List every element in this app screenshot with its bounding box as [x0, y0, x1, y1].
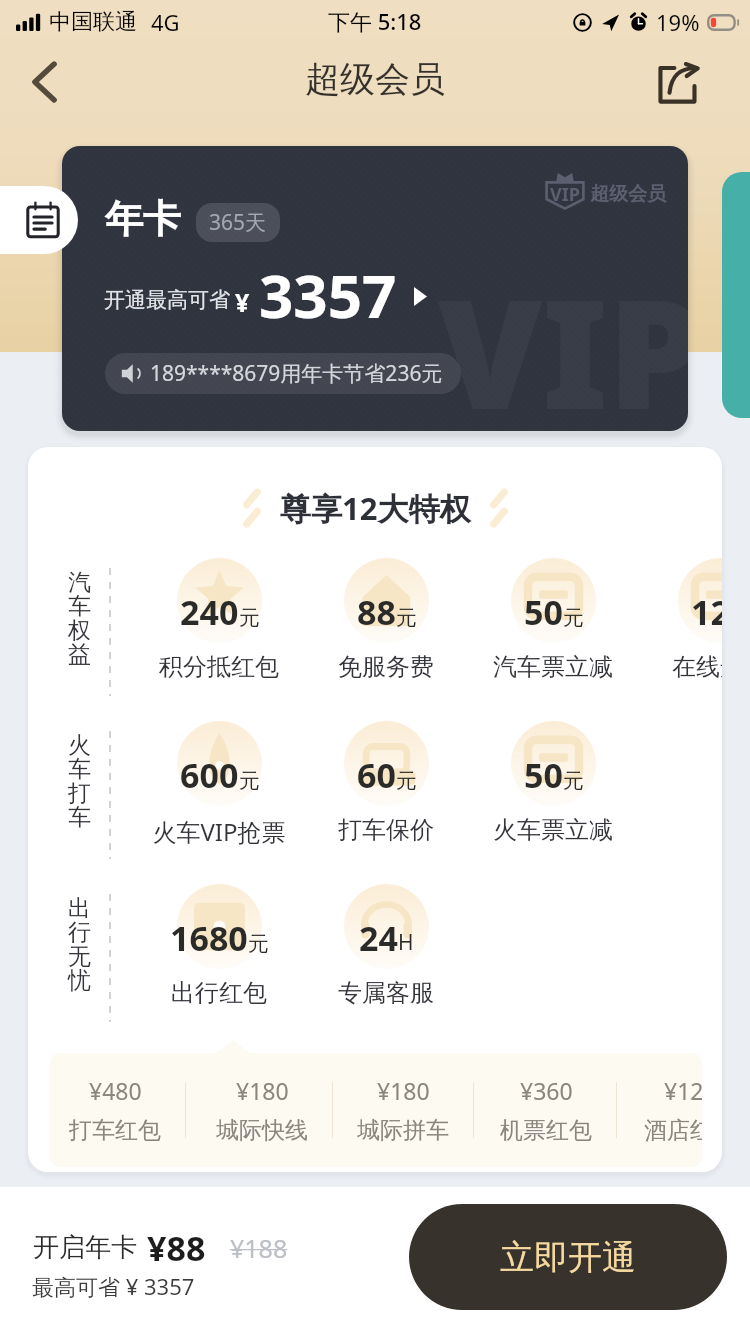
staticText: 50 — [524, 589, 563, 635]
button[interactable]: Next plan — [722, 172, 750, 418]
staticText: 打车红包 — [69, 1116, 161, 1145]
staticText: 城际拼车 — [357, 1116, 449, 1145]
staticText: H — [398, 928, 414, 957]
staticText: 19% — [656, 7, 700, 37]
staticText: ¥180 — [236, 1075, 289, 1106]
staticText: 元 — [563, 605, 584, 631]
staticText: 元 — [563, 768, 584, 794]
staticText: 元 — [239, 768, 260, 794]
staticText: 1680 — [170, 915, 248, 961]
button[interactable]: 88 — [302, 556, 470, 682]
button[interactable]: 600 — [135, 719, 303, 848]
staticText: 24 — [359, 915, 398, 961]
button[interactable]: 60 — [302, 719, 470, 845]
staticText: ¥188 — [230, 1231, 288, 1265]
button[interactable]: 50 — [469, 556, 637, 682]
staticText: VIP — [438, 249, 688, 431]
staticText: VIP — [550, 182, 580, 207]
staticText: 汽车票立减 — [493, 652, 613, 682]
button[interactable]: 12 — [636, 556, 722, 682]
button[interactable]: 立即开通 — [409, 1204, 727, 1310]
staticText: ¥88 — [147, 1225, 206, 1271]
staticText: ¥360 — [520, 1075, 573, 1106]
staticText: 最高可省 ¥ 3357 — [32, 1271, 195, 1301]
button[interactable]: 1680 — [135, 882, 303, 1008]
staticText: 火车VIP抢票 — [152, 815, 286, 848]
button[interactable]: ¥180 — [333, 1075, 473, 1145]
staticText: ¥480 — [89, 1075, 142, 1106]
staticText: 专属客服 — [338, 978, 434, 1008]
staticText: 免服务费 — [338, 652, 434, 682]
staticText: 12 — [691, 589, 722, 635]
staticText: 超级会员 — [305, 57, 445, 101]
staticText: 酒店红包 — [644, 1116, 702, 1145]
button[interactable]: VIP — [62, 146, 688, 431]
staticText: 240 — [180, 589, 239, 635]
staticText: 立即开通 — [500, 1236, 636, 1279]
staticText: 元 — [239, 605, 260, 631]
button[interactable]: ¥360 — [476, 1075, 616, 1145]
staticText: 元 — [396, 768, 417, 794]
staticText: 元 — [248, 931, 269, 957]
staticText: 50 — [524, 752, 563, 798]
staticText: 打车保价 — [338, 815, 434, 845]
button[interactable]: My orders — [0, 186, 78, 254]
staticText: 开启年卡 — [33, 1231, 137, 1264]
staticText: 出 行 无 忧 — [68, 894, 91, 995]
staticText: 机票红包 — [500, 1116, 592, 1145]
staticText: 600 — [180, 752, 239, 798]
staticText: 365天 — [209, 208, 267, 237]
staticText: 汽 车 权 益 — [68, 568, 91, 669]
button[interactable]: 24 — [302, 882, 470, 1008]
staticText: 火车票立减 — [493, 815, 613, 845]
staticText: ¥ — [235, 285, 250, 319]
staticText: 下午 5:18 — [328, 6, 422, 36]
staticText: 积分抵红包 — [159, 652, 279, 682]
staticText: ¥120 — [664, 1075, 702, 1106]
staticText: 189****8679用年卡节省236元 — [150, 359, 443, 388]
staticText: 60 — [357, 752, 396, 798]
staticText: 城际快线 — [216, 1116, 308, 1145]
staticText: 开通最高可省 — [104, 287, 230, 313]
staticText: 中国联通 — [49, 8, 137, 36]
button[interactable]: ¥120 — [620, 1075, 702, 1145]
staticText: 年卡 — [105, 195, 181, 243]
button[interactable]: 240 — [135, 556, 303, 682]
staticText: 火 车 打 车 — [68, 731, 91, 832]
staticText: 元 — [396, 605, 417, 631]
button[interactable]: ¥480 — [50, 1075, 185, 1145]
button[interactable]: Share — [650, 56, 706, 112]
staticText: 4G — [151, 7, 180, 37]
staticText: 在线选座 — [672, 652, 722, 682]
button[interactable]: ¥180 — [192, 1075, 332, 1145]
staticText: 88 — [357, 589, 396, 635]
staticText: 出行红包 — [171, 978, 267, 1008]
staticText: ¥180 — [377, 1075, 430, 1106]
staticText: 3357 — [259, 254, 397, 336]
staticText: 尊享12大特权 — [280, 487, 471, 529]
button[interactable]: 50 — [469, 719, 637, 845]
staticText: 超级会员 — [590, 182, 666, 206]
button[interactable]: Back — [16, 54, 72, 110]
